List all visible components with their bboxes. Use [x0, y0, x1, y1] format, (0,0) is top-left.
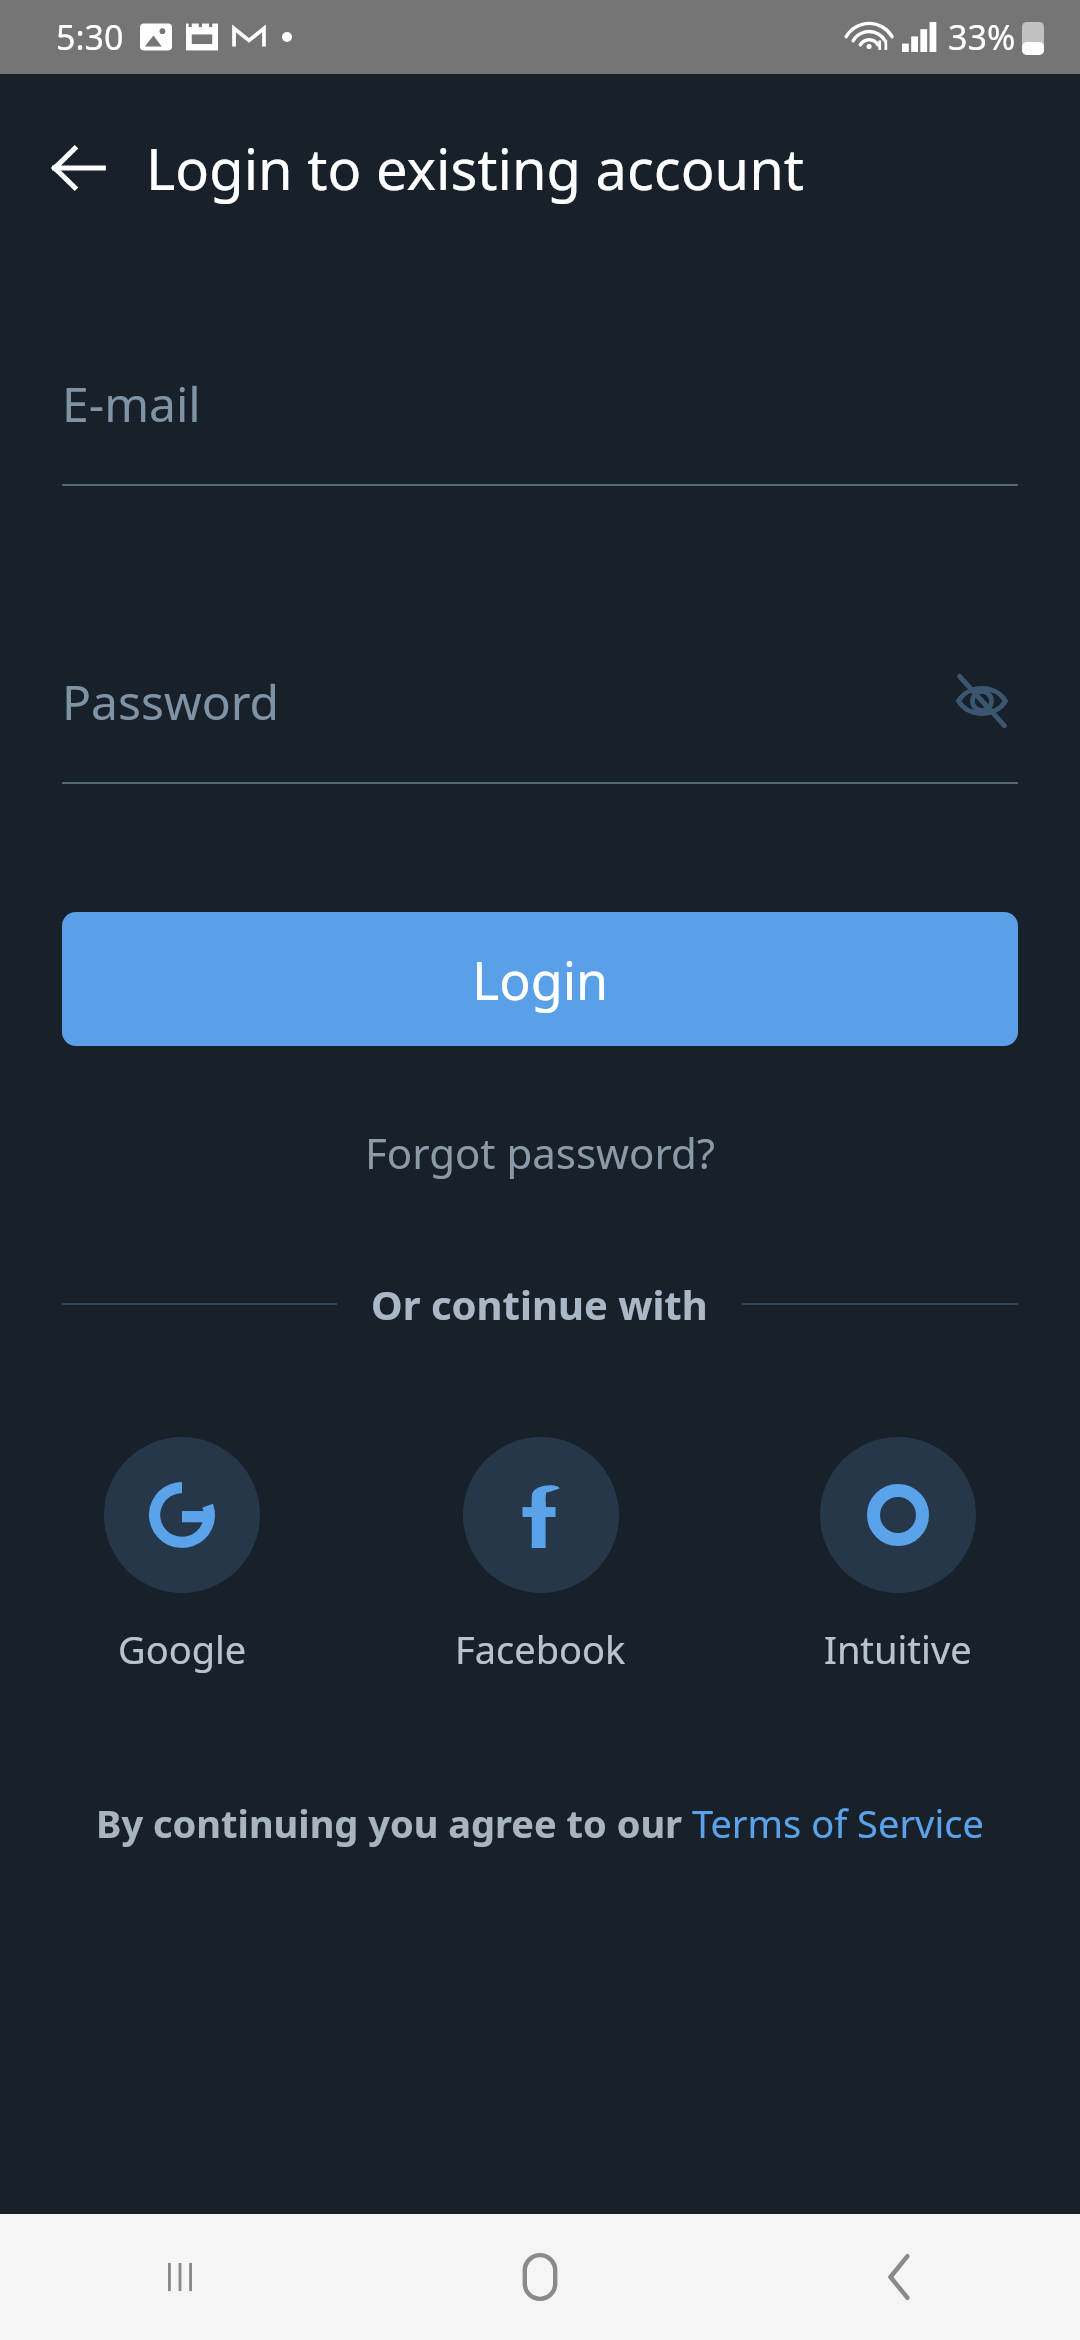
staticText: Facebook: [455, 1623, 626, 1675]
staticText: 5:30: [56, 14, 124, 60]
staticText: E-mail: [62, 371, 201, 436]
staticText: Login to existing account: [146, 130, 805, 206]
staticText: Forgot password?: [365, 1124, 716, 1181]
button[interactable]: Forgot password?: [341, 1116, 740, 1189]
staticText: Login: [472, 944, 609, 1015]
button[interactable]: Facebook: [451, 1433, 630, 1679]
staticText: Google: [118, 1623, 247, 1675]
button[interactable]: Show password: [946, 665, 1018, 737]
button[interactable]: Login: [62, 912, 1018, 1046]
staticText: Or continue with: [371, 1277, 708, 1331]
staticText: Intuitive: [824, 1623, 972, 1675]
button[interactable]: Recent apps: [0, 2214, 360, 2340]
staticText: 33%: [948, 14, 1016, 60]
button[interactable]: Google: [100, 1433, 264, 1679]
button[interactable]: By continuing you agree to our Terms of …: [76, 1789, 1004, 1857]
staticText: Password: [62, 669, 280, 734]
button[interactable]: Home: [360, 2214, 720, 2340]
button[interactable]: Back: [720, 2214, 1080, 2340]
button[interactable]: Intuitive: [816, 1433, 980, 1679]
staticText: By continuing you agree to our Terms of …: [96, 1797, 984, 1849]
button[interactable]: Back: [34, 123, 124, 213]
